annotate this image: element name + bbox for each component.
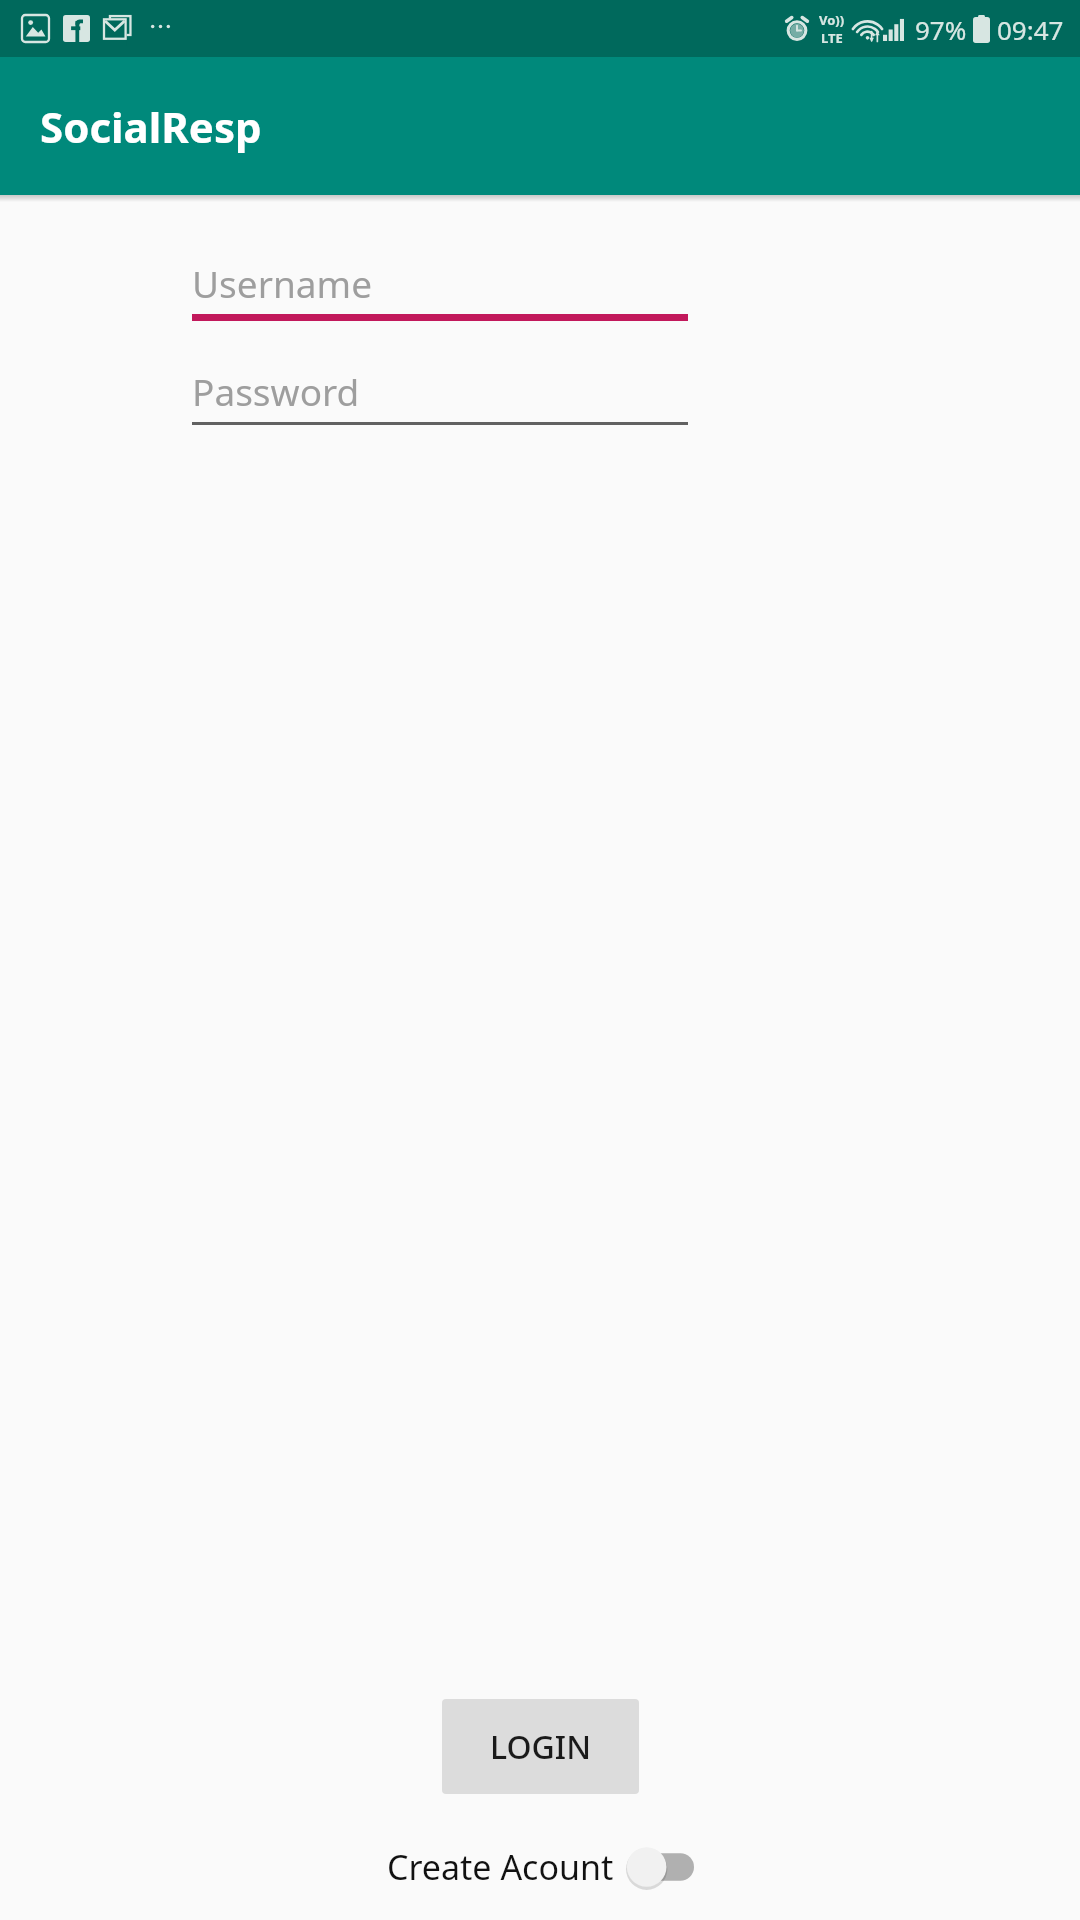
button[interactable]: Create Acount — [387, 1844, 694, 1890]
button[interactable]: Password — [192, 360, 688, 430]
button[interactable]: Username — [192, 252, 688, 322]
staticText: SocialResp — [40, 98, 262, 155]
staticText: 97% — [915, 12, 967, 47]
staticText: Vo)) — [819, 11, 845, 29]
staticText: 09:47 — [997, 12, 1064, 47]
staticText: Password — [192, 366, 360, 416]
staticText: LOGIN — [490, 1725, 591, 1769]
other: Create Account toggle — [626, 1845, 694, 1889]
button[interactable]: LOGIN — [442, 1699, 639, 1794]
staticText: Username — [192, 258, 373, 308]
staticText: Create Acount — [387, 1844, 614, 1890]
staticText: LTE — [821, 29, 843, 47]
